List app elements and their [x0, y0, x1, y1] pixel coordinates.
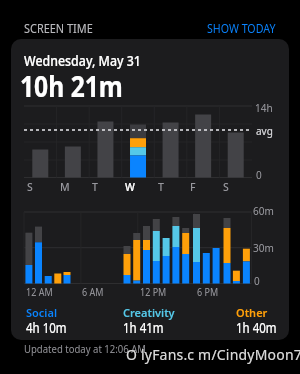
- staticText: 1h 40m: [236, 318, 277, 337]
- staticText: Creativity: [123, 305, 175, 320]
- staticText: 14h: [255, 101, 273, 115]
- staticText: 0: [256, 168, 262, 182]
- staticText: T: [92, 180, 98, 194]
- staticText: 6 PM: [197, 285, 219, 299]
- staticText: 60m: [253, 204, 274, 218]
- staticText: 12 AM: [26, 285, 53, 299]
- staticText: SCREEN TIME: [24, 19, 93, 37]
- staticText: 10h 21m: [20, 66, 124, 105]
- staticText: 30m: [253, 241, 274, 255]
- staticText: 0: [254, 274, 260, 288]
- staticText: Social: [26, 305, 58, 320]
- staticText: S: [27, 180, 33, 194]
- staticText: Other: [236, 305, 268, 320]
- staticText: avg: [256, 124, 273, 138]
- staticText: 1h 41m: [123, 318, 164, 337]
- staticText: 12 PM: [140, 285, 167, 299]
- button[interactable]: [11, 39, 289, 340]
- staticText: M: [60, 180, 70, 194]
- staticText: F: [190, 180, 196, 194]
- button[interactable]: SHOW TODAY: [207, 19, 276, 37]
- staticText: O lyFans.c m/CindyMoon7: [126, 345, 300, 364]
- staticText: S: [223, 180, 229, 194]
- staticText: T: [158, 180, 164, 194]
- staticText: Wednesday, May 31: [24, 51, 142, 70]
- staticText: W: [125, 180, 135, 194]
- staticText: Updated today at 12:06 AM: [24, 341, 146, 357]
- staticText: 4h 10m: [26, 318, 67, 337]
- button[interactable]: [20, 302, 110, 336]
- staticText: 6 AM: [82, 285, 104, 299]
